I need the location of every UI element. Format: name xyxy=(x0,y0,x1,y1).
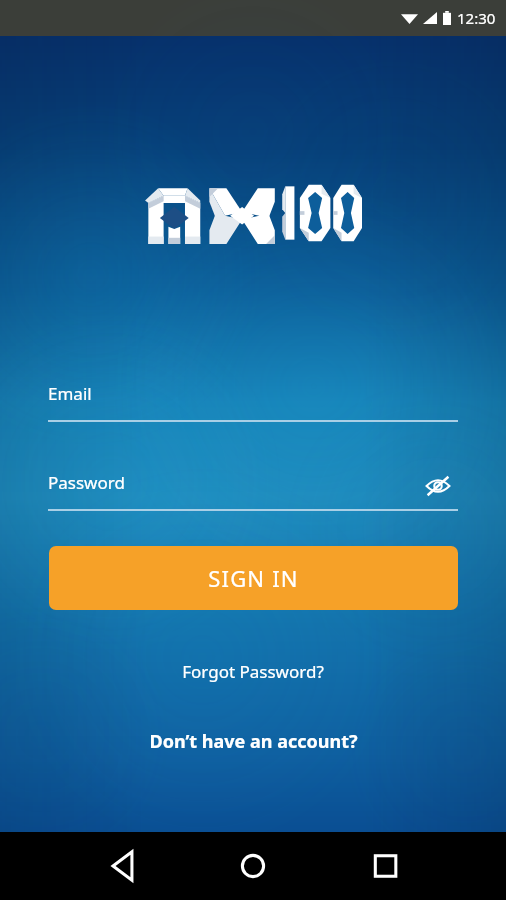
button[interactable]: Email xyxy=(48,382,458,422)
button[interactable]: Show password xyxy=(416,464,460,508)
staticText: 12:30 xyxy=(457,8,496,28)
staticText: Email xyxy=(48,382,92,405)
staticText: Password xyxy=(48,471,125,494)
button[interactable]: SIGN IN xyxy=(49,546,458,610)
button[interactable]: Forgot Password? xyxy=(182,660,324,683)
button[interactable]: Don’t have an account? xyxy=(149,729,358,754)
staticText: SIGN IN xyxy=(208,563,299,593)
button[interactable]: Password xyxy=(48,471,458,511)
staticText: Forgot Password? xyxy=(182,660,324,683)
staticText: Don’t have an account? xyxy=(149,729,358,754)
